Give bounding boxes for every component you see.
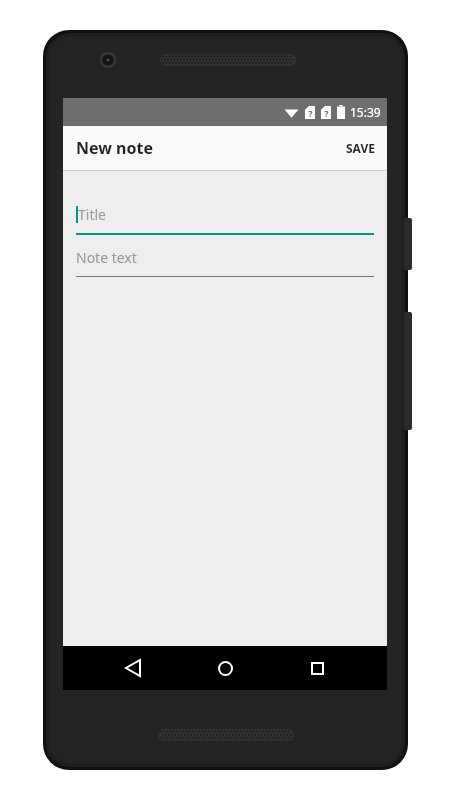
staticText: Note text — [76, 248, 137, 267]
staticText: Title — [78, 205, 106, 224]
button[interactable]: Recent apps — [295, 646, 339, 690]
button[interactable]: Note text — [76, 248, 374, 277]
button[interactable]: Back — [111, 646, 155, 690]
button[interactable]: Title — [76, 205, 374, 235]
staticText: ? — [324, 107, 329, 119]
staticText: 15:39 — [350, 104, 381, 120]
staticText: New note — [76, 137, 153, 159]
button[interactable]: SAVE — [334, 126, 387, 170]
staticText: ? — [308, 107, 313, 119]
staticText: SAVE — [346, 140, 375, 156]
button[interactable]: Home — [203, 646, 247, 690]
